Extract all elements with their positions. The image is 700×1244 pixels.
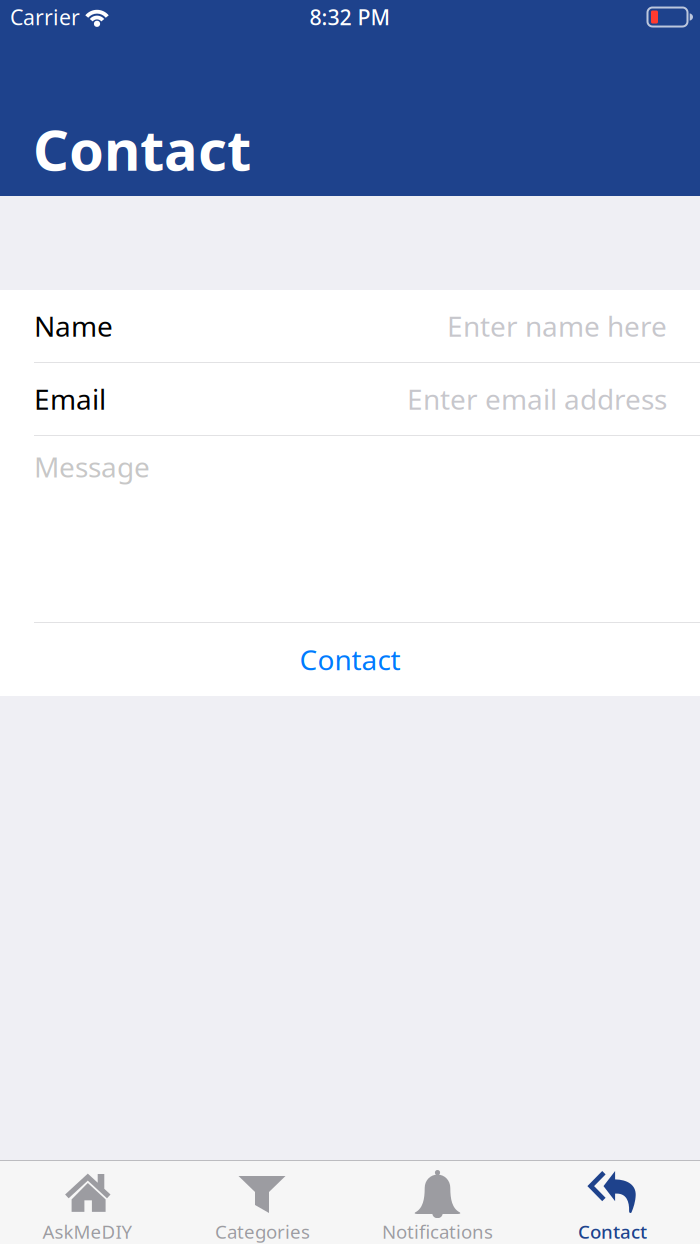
staticText: Name (34, 307, 113, 345)
staticText: Email (34, 380, 106, 418)
button[interactable]: Categories (175, 1161, 350, 1244)
staticText: AskMeDIY (42, 1219, 132, 1244)
button[interactable]: Contact (0, 623, 700, 696)
button[interactable]: Message (0, 436, 700, 622)
staticText: 8:32 PM (309, 3, 390, 31)
staticText: Enter name here (447, 307, 667, 345)
staticText: Contact (299, 641, 400, 678)
button[interactable]: Notifications (350, 1161, 525, 1244)
staticText: Notifications (382, 1219, 493, 1244)
staticText: Carrier (10, 3, 80, 31)
staticText: Enter email address (407, 380, 667, 418)
button[interactable]: Email (0, 363, 700, 435)
staticText: Contact (578, 1219, 647, 1244)
button[interactable]: Name (0, 290, 700, 362)
button[interactable]: Contact (525, 1161, 700, 1244)
staticText: Message (34, 448, 150, 485)
button[interactable]: AskMeDIY (0, 1161, 175, 1244)
staticText: Categories (215, 1219, 310, 1244)
staticText: Contact (33, 112, 251, 186)
